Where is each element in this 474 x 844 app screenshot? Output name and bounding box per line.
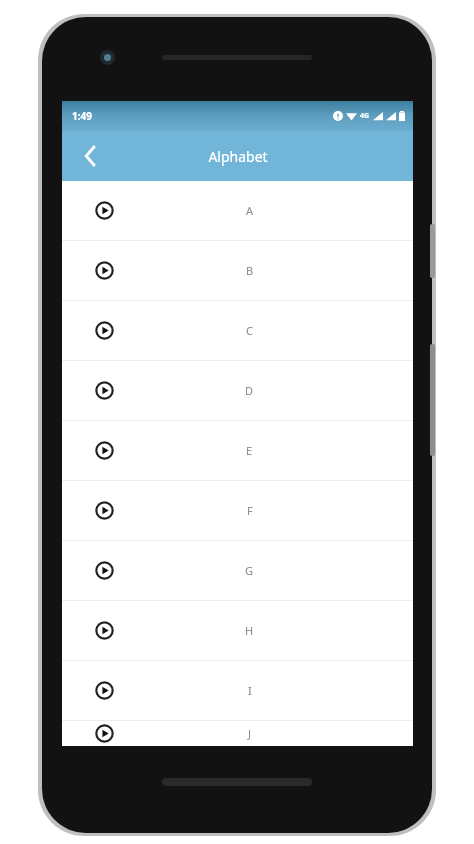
button[interactable]: E	[62, 421, 413, 480]
staticText: G	[245, 563, 254, 578]
button[interactable]: A	[62, 181, 413, 240]
staticText: 1:49	[72, 109, 92, 123]
button[interactable]: I	[62, 661, 413, 720]
staticText: D	[245, 383, 254, 398]
staticText: J	[248, 726, 252, 741]
staticText: I	[248, 683, 252, 698]
staticText: A	[246, 203, 254, 218]
staticText: C	[246, 323, 253, 338]
button[interactable]: J	[62, 721, 413, 746]
staticText: F	[247, 503, 253, 518]
button[interactable]: F	[62, 481, 413, 540]
staticText: H	[245, 623, 254, 638]
button[interactable]: C	[62, 301, 413, 360]
button[interactable]: G	[62, 541, 413, 600]
button[interactable]: Back	[68, 133, 114, 179]
button[interactable]: H	[62, 601, 413, 660]
staticText: Alphabet	[208, 147, 268, 166]
staticText: 4G	[360, 111, 370, 121]
button[interactable]: B	[62, 241, 413, 300]
button[interactable]: D	[62, 361, 413, 420]
staticText: E	[246, 443, 253, 458]
staticText: B	[246, 263, 254, 278]
